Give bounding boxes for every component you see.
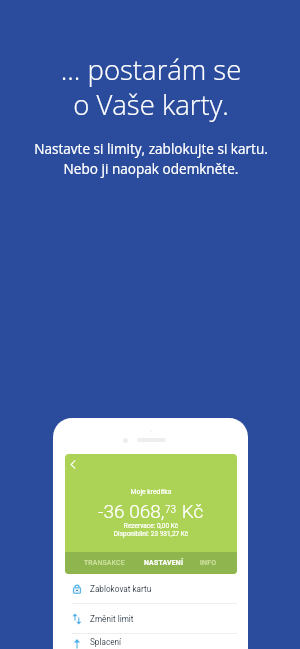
button[interactable]: NASTAVENÍ: [144, 552, 179, 574]
staticText: Zablokovat kartu: [90, 584, 152, 594]
staticText: -36 068,: [98, 500, 165, 522]
staticText: Splacení: [90, 637, 122, 647]
button[interactable]: Zablokovat kartu: [65, 574, 237, 604]
button[interactable]: Splacení: [65, 634, 237, 649]
button[interactable]: INFO: [179, 552, 237, 574]
staticText: INFO: [200, 559, 217, 567]
staticText: Změnit limit: [90, 614, 134, 624]
staticText: Kč: [177, 500, 204, 522]
staticText: Moje kreditka: [65, 488, 237, 496]
staticText: Rezervace: 0,00 Kč: [65, 522, 237, 530]
staticText: TRANSAKCE: [84, 559, 125, 567]
button[interactable]: Back: [70, 460, 76, 469]
button[interactable]: TRANSAKCE: [65, 552, 144, 574]
staticText: 73: [165, 504, 177, 516]
staticText: ... postarám se o Vaše karty.: [1, 51, 300, 124]
staticText: Disponibilní: 23 931,27 Kč: [65, 530, 237, 538]
staticText: Nastavte si limity, zablokujte si kartu.…: [1, 139, 300, 178]
staticText: NASTAVENÍ: [144, 559, 179, 567]
button[interactable]: Změnit limit: [65, 604, 237, 634]
